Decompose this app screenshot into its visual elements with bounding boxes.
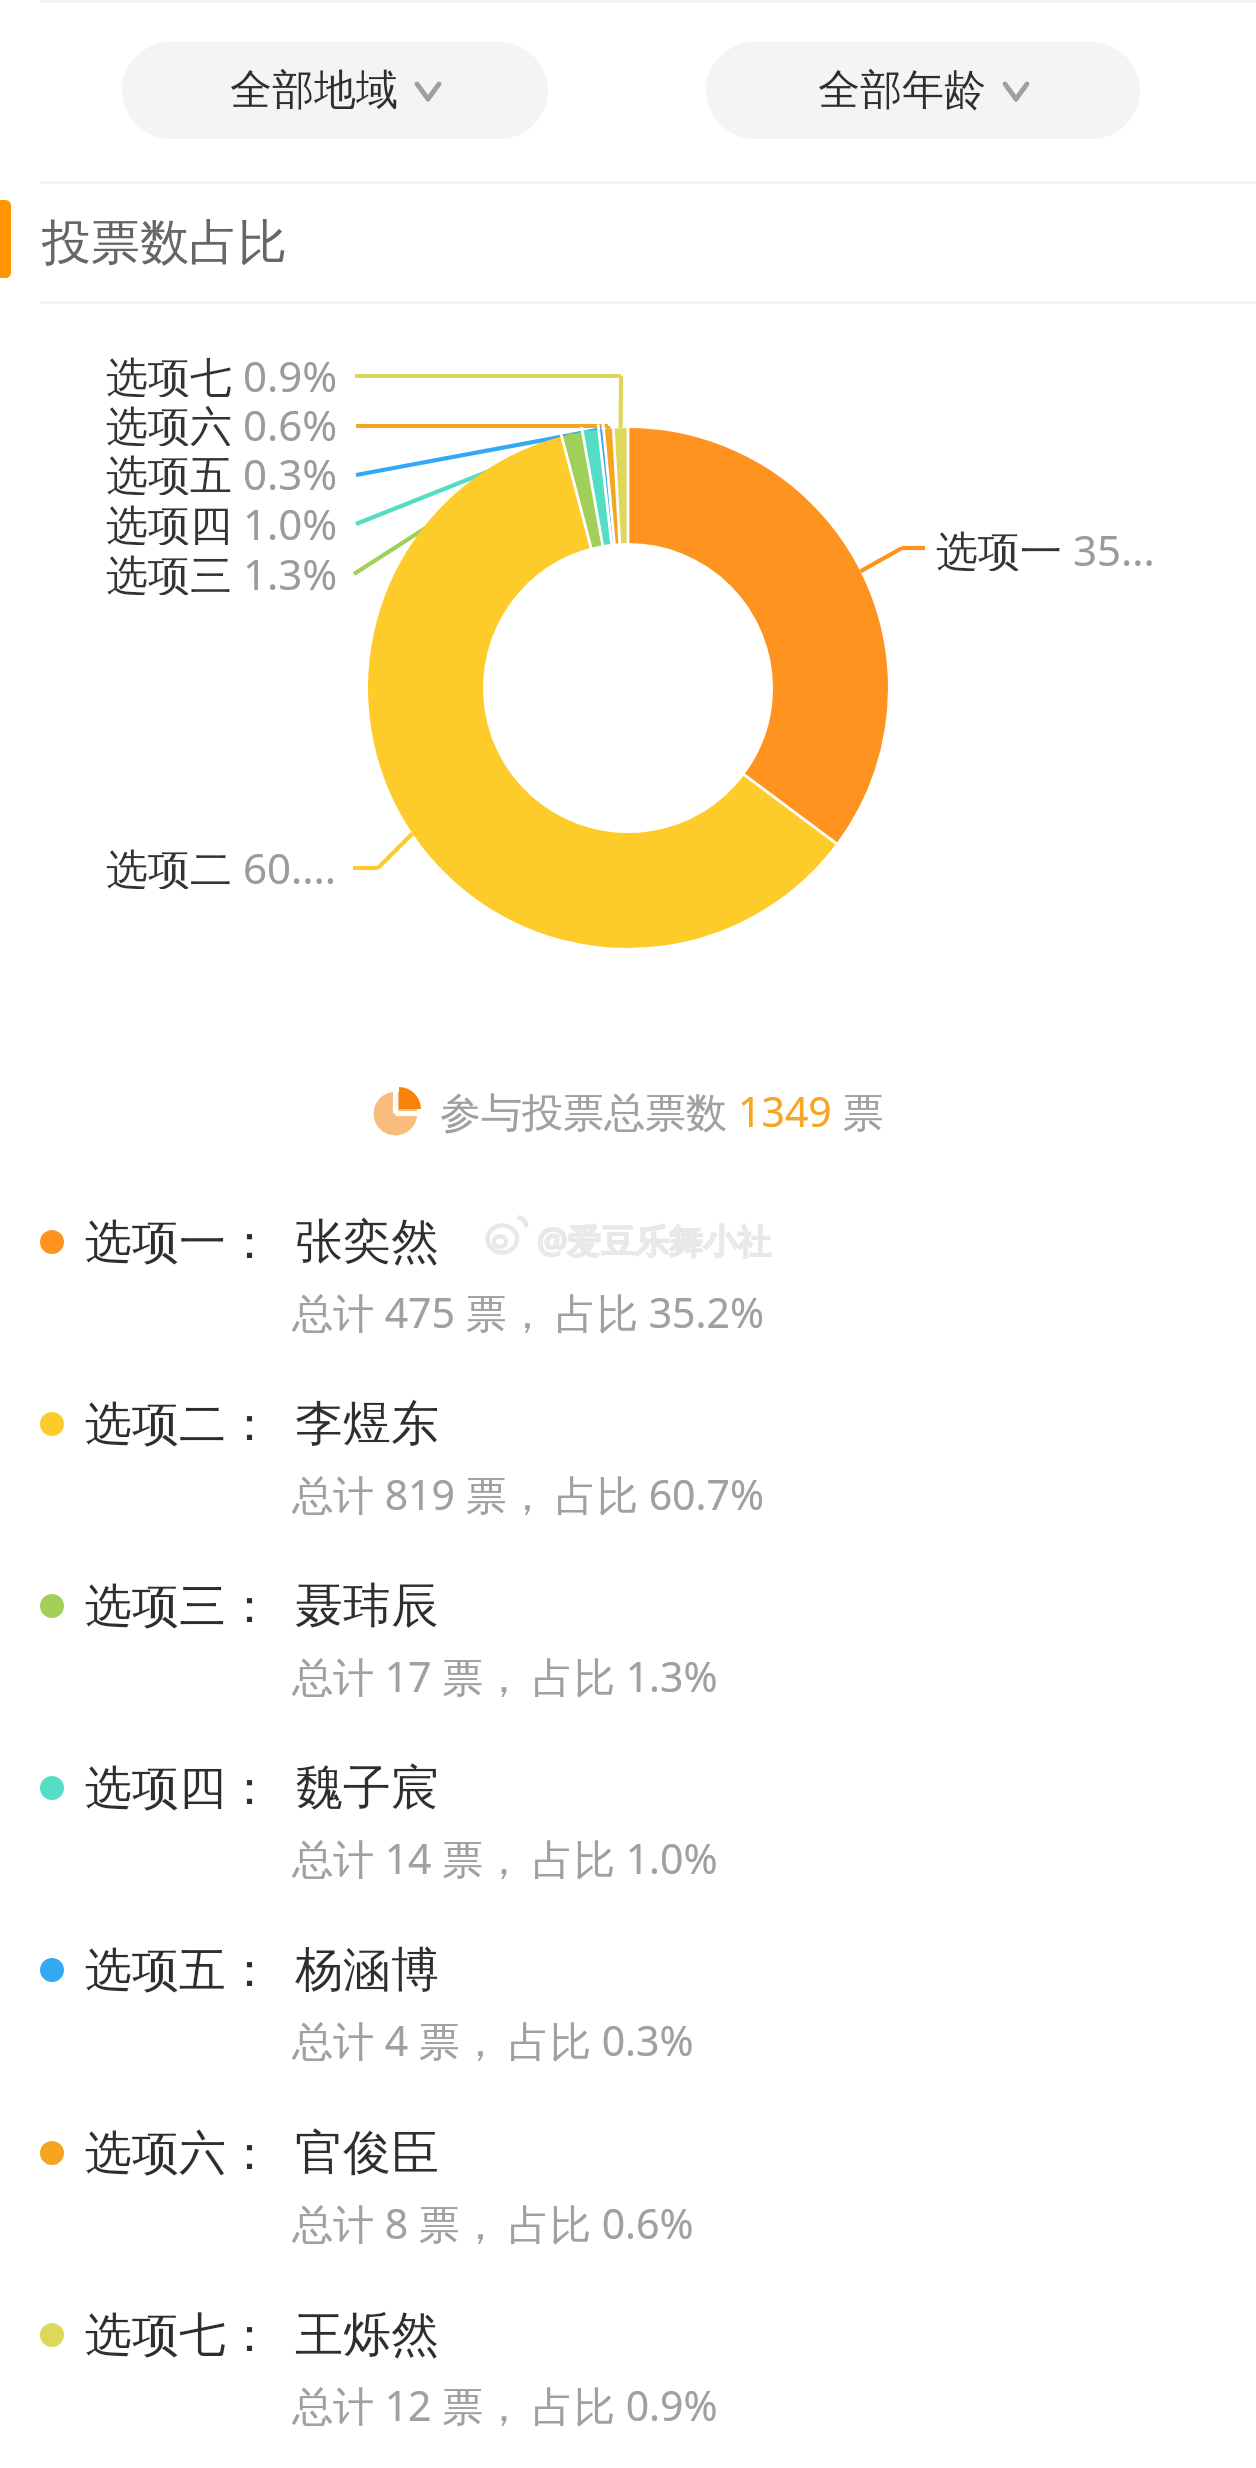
button[interactable]: 选项二：	[0, 1394, 1256, 1554]
staticText: 选项一	[936, 521, 1073, 571]
staticText: 杨涵博	[295, 1940, 439, 2000]
staticText: 1.3%	[243, 545, 338, 595]
staticText: 选项七：	[85, 2306, 273, 2365]
staticText: 选项三	[106, 545, 243, 595]
staticText: 占比 0.3%	[509, 2012, 694, 2068]
staticText: 选项二	[106, 839, 243, 889]
staticText: 选项二：	[85, 1395, 273, 1454]
staticText: 选项七	[106, 347, 243, 397]
staticText: 选项四	[106, 495, 243, 545]
other: Weibo watermark	[486, 1212, 772, 1268]
staticText: 总计 819 票，	[292, 1466, 548, 1522]
staticText: 参与投票总票数	[440, 1083, 738, 1139]
button[interactable]: 选项四：	[0, 1758, 1256, 1918]
staticText: 选项一：	[85, 1213, 273, 1272]
staticText: 总计 12 票，	[292, 2377, 525, 2433]
button[interactable]: 选项六：	[0, 2123, 1256, 2283]
staticText: 35...	[1073, 521, 1155, 571]
staticText: 占比 1.0%	[533, 1830, 718, 1886]
button[interactable]: 全部地域	[122, 42, 548, 139]
staticText: 0.6%	[243, 396, 338, 446]
staticText: 票	[832, 1083, 884, 1139]
staticText: 张奕然	[295, 1212, 439, 1272]
staticText: 选项三：	[85, 1577, 273, 1636]
staticText: 魏子宸	[295, 1758, 439, 1818]
staticText: 总计 14 票，	[292, 1830, 525, 1886]
staticText: 选项四：	[85, 1759, 273, 1818]
staticText: 选项六：	[85, 2124, 273, 2183]
staticText: 1.0%	[243, 495, 338, 545]
staticText: 0.3%	[243, 445, 338, 495]
staticText: 选项五：	[85, 1941, 273, 2000]
staticText: 投票数占比	[42, 212, 287, 274]
staticText: 总计 4 票，	[292, 2012, 501, 2068]
staticText: 占比 1.3%	[533, 1648, 718, 1704]
staticText: 官俊臣	[295, 2123, 439, 2183]
staticText: 占比 0.9%	[533, 2377, 718, 2433]
staticText: 聂玮辰	[295, 1576, 439, 1636]
button[interactable]: 全部年龄	[706, 42, 1140, 139]
staticText: 李煜东	[295, 1394, 439, 1454]
staticText: 总计 475 票，	[292, 1284, 548, 1340]
button[interactable]: 选项一：	[0, 1212, 1256, 1372]
staticText: 王烁然	[295, 2305, 439, 2365]
staticText: 选项五	[106, 445, 243, 495]
button[interactable]: 投票数占比	[0, 184, 1256, 302]
staticText: 占比 60.7%	[556, 1466, 765, 1522]
staticText: 全部年龄	[818, 64, 986, 117]
staticText: @爱豆乐舞小社	[537, 1217, 772, 1263]
staticText: 60....	[243, 839, 337, 889]
staticText: 总计 8 票，	[292, 2195, 501, 2251]
staticText: 0.9%	[243, 347, 338, 397]
staticText: 总计 17 票，	[292, 1648, 525, 1704]
staticText: 占比 35.2%	[556, 1284, 765, 1340]
staticText: 占比 0.6%	[509, 2195, 694, 2251]
button[interactable]: 选项三：	[0, 1576, 1256, 1736]
staticText: 全部地域	[230, 64, 398, 117]
button[interactable]: 选项五：	[0, 1940, 1256, 2100]
button[interactable]: 选项七：	[0, 2305, 1256, 2465]
staticText: 选项六	[106, 396, 243, 446]
staticText: 1349	[738, 1083, 832, 1139]
